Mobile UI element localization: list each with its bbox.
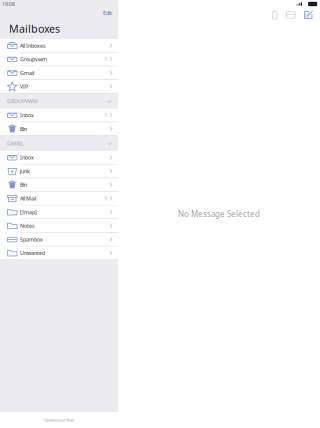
staticText: [Imap] xyxy=(20,208,37,216)
staticText: GROUPVWM xyxy=(7,98,38,105)
button[interactable]: Unwanted xyxy=(0,246,118,260)
button[interactable]: Bin xyxy=(0,122,118,136)
button[interactable]: Delete xyxy=(268,6,282,23)
staticText: 1 xyxy=(104,112,107,119)
staticText: All Mail xyxy=(20,195,36,202)
staticText: Edit xyxy=(103,9,112,17)
staticText: Mailboxes xyxy=(9,21,60,36)
button[interactable]: Inbox xyxy=(0,109,118,122)
button[interactable]: Move to folder xyxy=(282,7,300,23)
button[interactable]: Compose xyxy=(300,6,317,24)
button[interactable]: All Mail xyxy=(0,192,118,205)
staticText: Bin xyxy=(20,181,27,188)
staticText: Inbox xyxy=(20,154,34,161)
staticText: Unwanted xyxy=(20,249,45,257)
staticText: Spambox xyxy=(20,236,43,243)
button[interactable]: Junk xyxy=(0,164,118,178)
staticText: GMAIL xyxy=(7,140,24,147)
staticText: No Message Selected xyxy=(178,209,260,219)
button[interactable]: Inbox xyxy=(0,151,118,165)
button[interactable]: [Imap] xyxy=(0,205,118,219)
button[interactable]: All Inboxes xyxy=(0,39,118,53)
staticText: Bin xyxy=(20,125,27,132)
staticText: 1 xyxy=(104,56,107,63)
staticText: Groupvwm xyxy=(20,56,47,63)
button[interactable]: Bin xyxy=(0,178,118,192)
button[interactable]: Spambox xyxy=(0,233,118,246)
staticText: Notes xyxy=(20,222,35,229)
button[interactable]: Notes xyxy=(0,219,118,233)
staticText: 1 xyxy=(104,195,107,202)
staticText: Inbox xyxy=(20,112,34,119)
staticText: All Inboxes xyxy=(20,42,46,49)
button[interactable]: Edit xyxy=(103,8,118,18)
button[interactable]: Gmail xyxy=(0,66,118,80)
button[interactable]: Groupvwm xyxy=(0,53,118,66)
staticText: 19:08 xyxy=(2,0,15,8)
staticText: Gmail xyxy=(20,69,34,76)
staticText: Updated Just Now xyxy=(44,417,74,423)
staticText: Junk xyxy=(20,168,30,175)
button[interactable]: VIP xyxy=(0,80,118,94)
staticText: VIP xyxy=(20,83,28,90)
